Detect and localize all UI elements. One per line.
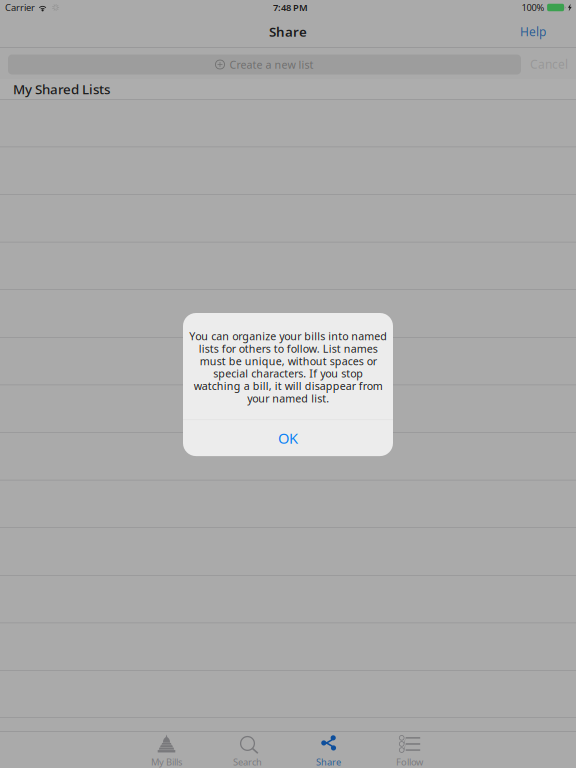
staticText: 7:48 PM [273, 1, 308, 14]
button[interactable]: Search [207, 731, 288, 768]
staticText: My Bills [151, 756, 182, 768]
staticText: My Shared Lists [13, 80, 110, 98]
button[interactable]: Cancel [526, 51, 572, 77]
staticText: Search [233, 756, 262, 768]
button[interactable]: Help [508, 15, 558, 48]
button[interactable]: Follow [369, 731, 450, 768]
staticText: Share [316, 756, 341, 768]
button[interactable] [0, 385, 576, 432]
staticText: Create a new list [229, 57, 313, 72]
button[interactable]: My Bills [126, 731, 207, 768]
staticText: Share [269, 23, 307, 40]
button[interactable] [0, 432, 576, 480]
staticText: You can organize your bills into named l… [189, 329, 387, 405]
button[interactable]: Create a new list [8, 54, 521, 74]
staticText: Follow [396, 756, 423, 768]
staticText: 100% [522, 1, 545, 14]
staticText: Help [520, 23, 546, 39]
button[interactable] [0, 289, 576, 337]
staticText: OK [278, 428, 298, 448]
staticText: Carrier [5, 1, 35, 14]
button[interactable]: Share [288, 731, 369, 768]
button[interactable]: OK [183, 420, 393, 456]
button[interactable] [0, 337, 576, 385]
staticText: Cancel [530, 56, 568, 72]
